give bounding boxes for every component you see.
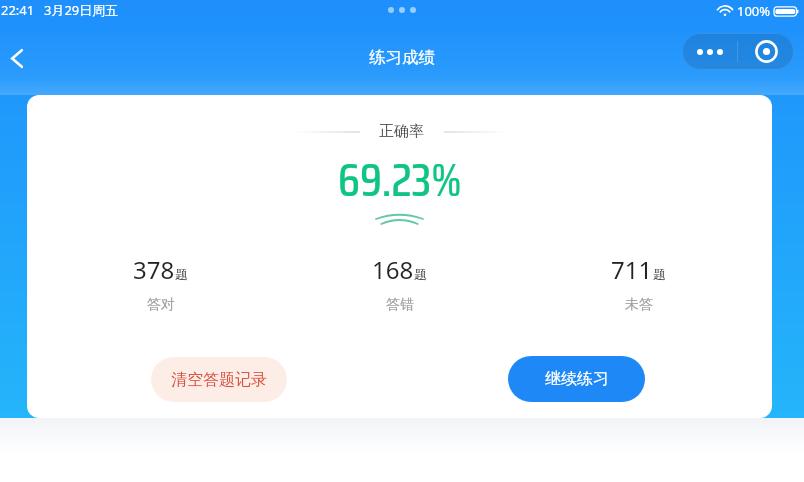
staticText: 答对 [147, 296, 175, 314]
staticText: 题 [414, 266, 427, 282]
staticText: 未答 [625, 296, 653, 314]
staticText: 继续练习 [545, 369, 609, 389]
button[interactable]: Back [0, 36, 33, 80]
staticText: 100% [737, 2, 771, 20]
staticText: 题 [653, 266, 666, 282]
staticText: 3月29日周五 [44, 1, 119, 19]
button[interactable]: 继续练习 [508, 356, 645, 402]
button[interactable]: 清空答题记录 [151, 357, 287, 402]
staticText: 清空答题记录 [171, 370, 267, 390]
staticText: 168 [372, 253, 414, 286]
button[interactable]: Close mini program [738, 33, 794, 70]
staticText: 711 [611, 253, 653, 286]
staticText: 22:41 [1, 1, 35, 19]
staticText: 题 [175, 266, 188, 282]
staticText: 正确率 [379, 122, 424, 141]
staticText: 练习成绩 [369, 47, 435, 68]
button[interactable]: More options [682, 33, 737, 70]
staticText: 69.23% [338, 144, 462, 216]
staticText: 答错 [386, 296, 414, 314]
staticText: 378 [133, 253, 175, 286]
